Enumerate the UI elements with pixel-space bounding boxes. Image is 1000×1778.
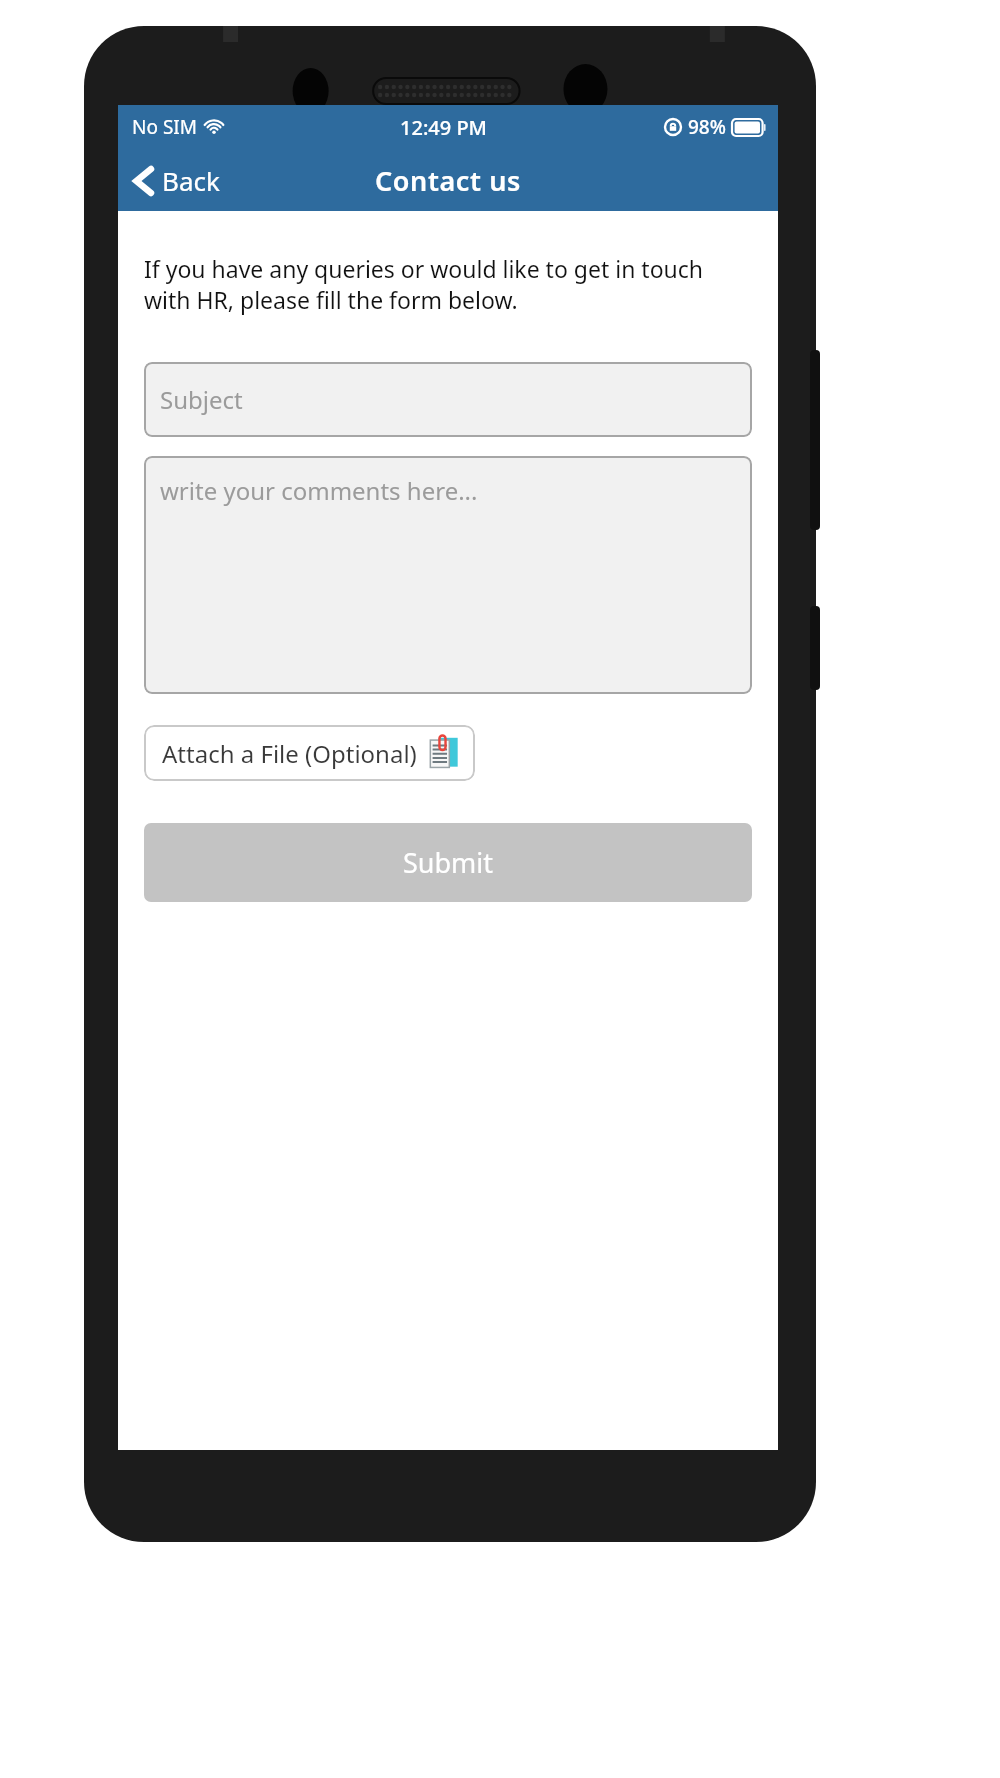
button[interactable]: Submit: [144, 823, 752, 902]
button[interactable]: Attach a File (Optional): [144, 725, 475, 781]
button[interactable]: Back: [126, 157, 228, 204]
staticText: write your comments here...: [160, 474, 478, 507]
staticText: Subject: [160, 383, 243, 416]
staticText: Back: [162, 163, 220, 198]
staticText: 12:49 PM: [400, 114, 487, 141]
staticText: Attach a File (Optional): [162, 737, 417, 770]
button[interactable]: write your comments here...: [144, 456, 752, 694]
button[interactable]: Subject: [144, 362, 752, 437]
staticText: 98%: [688, 114, 726, 140]
staticText: If you have any queries or would like to…: [144, 253, 752, 316]
staticText: Submit: [403, 844, 494, 881]
staticText: Contact us: [375, 162, 521, 199]
staticText: No SIM: [132, 114, 197, 140]
other: Attach a file: [425, 734, 463, 772]
